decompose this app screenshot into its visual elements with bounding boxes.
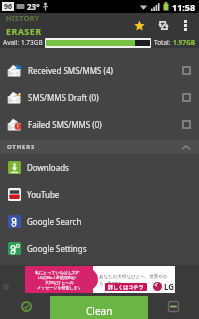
staticText: ERASER (6, 25, 42, 37)
button[interactable]: Google Search (0, 208, 199, 235)
button[interactable]: Google Settings (0, 235, 199, 262)
staticText: 詳しくはコチラ (108, 284, 144, 290)
staticText: LGのNo.1必然理由から (38, 275, 81, 280)
button[interactable]: More options (175, 13, 196, 37)
staticText: Received SMS/MMS (4) (28, 65, 113, 76)
staticText: 11:58 (172, 1, 196, 13)
button[interactable]: Deselect all (161, 294, 185, 318)
staticText: Avail: 1.73GB (3, 38, 43, 47)
staticText: OTHERS (7, 143, 36, 151)
button[interactable]: YouTube (0, 181, 199, 208)
staticText: Clean (86, 304, 113, 318)
staticText: 1.97GB (173, 38, 196, 47)
button[interactable]: 私にとっていちばん大切な (25, 266, 175, 293)
staticText: Google Settings (27, 243, 87, 254)
staticText: 大切なひとへの (45, 280, 74, 285)
staticText: 私にとっていちばん大切な (35, 270, 84, 275)
button[interactable]: Clean (50, 296, 148, 319)
button[interactable]: Received SMS/MMS (4) (0, 57, 199, 84)
staticText: Google Search (27, 216, 82, 227)
staticText: 96 (4, 2, 13, 11)
staticText: Downloads (27, 162, 69, 173)
staticText: HISTORY (6, 14, 40, 24)
staticText: SMS/MMS Draft (0) (28, 92, 99, 103)
staticText: あなたの大切なひとへ、世界やから。Next ▶ (99, 274, 175, 286)
staticText: LG (164, 281, 175, 292)
staticText: Total: (154, 38, 173, 47)
staticText: Failed SMS/MMS (0) (28, 119, 102, 130)
button[interactable]: Downloads (0, 154, 199, 181)
staticText: 23° (27, 1, 40, 12)
staticText: YouTube (27, 189, 60, 200)
staticText: メッセージを検索します (37, 285, 82, 290)
button[interactable]: Select all (14, 294, 38, 318)
button[interactable]: OTHERS (0, 140, 199, 154)
button[interactable]: Switch mode (151, 13, 175, 37)
button[interactable]: Favorites (127, 13, 151, 37)
button[interactable]: SMS/MMS Draft (0) (0, 84, 199, 111)
button[interactable]: Failed SMS/MMS (0) (0, 111, 199, 138)
